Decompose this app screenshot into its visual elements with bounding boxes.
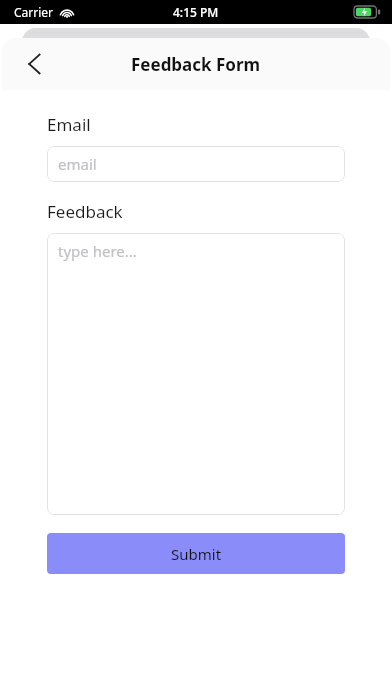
button[interactable]: email	[47, 146, 345, 182]
staticText: Feedback	[47, 200, 123, 223]
staticText: 4:15 PM	[173, 4, 219, 20]
staticText: Email	[47, 113, 91, 136]
staticText: Feedback Form	[131, 53, 261, 76]
staticText: email	[58, 154, 97, 174]
button[interactable]: Submit	[47, 533, 345, 574]
staticText: Submit	[171, 544, 222, 564]
staticText: Carrier	[14, 4, 54, 20]
button[interactable]: Back	[10, 40, 58, 88]
staticText: type here...	[58, 241, 137, 261]
button[interactable]: type here...	[47, 233, 345, 515]
